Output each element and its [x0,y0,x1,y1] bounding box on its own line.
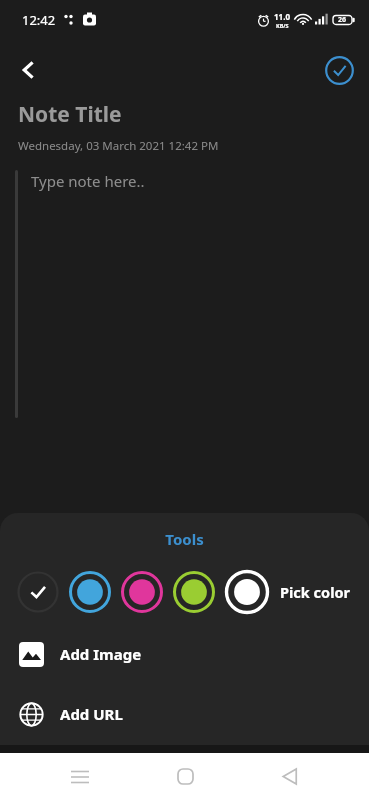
button[interactable]: Blue color [68,570,112,614]
staticText: KB/S [276,22,289,29]
button[interactable]: Add Image [0,637,369,671]
button[interactable]: Back [8,49,50,91]
staticText: 12:42 [22,11,56,29]
staticText: Add URL [60,704,123,724]
staticText: 26 [338,15,347,25]
button[interactable]: Pick color [224,569,270,615]
button[interactable]: Pink color [120,570,164,614]
staticText: 11.0 [274,11,290,22]
staticText: Add Image [60,644,142,664]
button[interactable]: Back [265,753,313,800]
button[interactable]: Pick color [280,582,350,602]
button[interactable]: Save note [319,50,359,90]
button[interactable]: Green color [172,570,216,614]
button[interactable]: Home [161,753,209,800]
button[interactable]: Add URL [0,697,369,731]
staticText: Note Title [18,100,122,129]
button[interactable]: Default color, selected [16,570,60,614]
staticText: Tools [0,529,369,549]
button[interactable]: Recents [56,753,104,800]
button[interactable]: Type note here.. [31,171,145,191]
staticText: Wednesday, 03 March 2021 12:42 PM [18,138,219,154]
